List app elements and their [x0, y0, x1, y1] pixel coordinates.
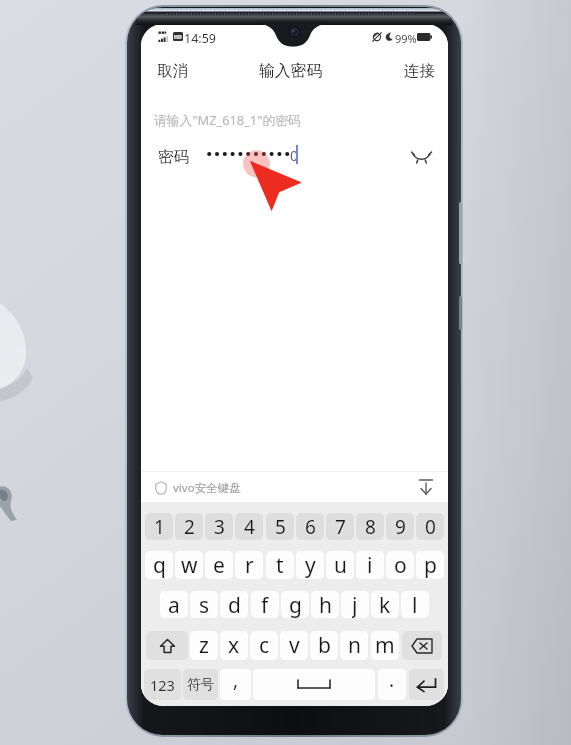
staticText: 8	[365, 514, 376, 540]
button[interactable]: .	[378, 669, 406, 700]
button[interactable]: y	[296, 551, 324, 579]
staticText: 0	[290, 146, 299, 165]
button[interactable]: j	[341, 591, 369, 618]
button[interactable]: 7	[326, 513, 354, 540]
button[interactable]: q	[145, 551, 173, 579]
button[interactable]: f	[251, 591, 279, 618]
staticText: c	[259, 631, 270, 660]
button[interactable]: 连接	[392, 52, 447, 90]
staticText: 3	[214, 514, 225, 540]
staticText: w	[181, 551, 198, 579]
button[interactable]: l	[401, 591, 429, 618]
button[interactable]: Space	[253, 669, 375, 700]
staticText: a	[168, 591, 180, 618]
staticText: 符号	[187, 676, 214, 693]
button[interactable]: h	[311, 591, 339, 618]
staticText: x	[228, 631, 240, 660]
button[interactable]: 123	[144, 669, 181, 700]
staticText: 123	[150, 675, 175, 695]
staticText: 1	[154, 514, 165, 540]
staticText: o	[394, 551, 407, 579]
button[interactable]: v	[280, 631, 308, 660]
button[interactable]: x	[220, 631, 248, 660]
staticText: d	[228, 591, 241, 618]
button[interactable]: a	[160, 591, 188, 618]
button[interactable]: 取消	[145, 52, 200, 90]
staticText: q	[153, 551, 166, 579]
button[interactable]: p	[416, 551, 444, 579]
staticText: 99%	[395, 31, 417, 46]
button[interactable]: z	[190, 631, 218, 660]
button[interactable]: Hide keyboard	[415, 477, 437, 499]
button[interactable]: k	[371, 591, 399, 618]
button[interactable]: d	[220, 591, 248, 618]
staticText: y	[305, 551, 316, 579]
staticText: k	[379, 591, 391, 618]
staticText: e	[213, 551, 225, 579]
button[interactable]: 密码	[141, 136, 448, 174]
staticText: 请输入"MZ_618_1"的密码	[154, 111, 301, 128]
staticText: 2	[184, 514, 195, 540]
button[interactable]: o	[386, 551, 414, 579]
staticText: 14:59	[184, 30, 216, 47]
staticText: p	[424, 551, 437, 579]
button[interactable]: g	[281, 591, 309, 618]
button[interactable]: r	[235, 551, 263, 579]
button[interactable]: Backspace	[402, 631, 442, 660]
button[interactable]: Shift	[146, 631, 188, 660]
staticText: f	[261, 591, 269, 618]
staticText: h	[319, 591, 332, 618]
button[interactable]: b	[310, 631, 338, 660]
button[interactable]: 5	[266, 513, 294, 540]
button[interactable]: u	[326, 551, 354, 579]
button[interactable]: w	[175, 551, 203, 579]
staticText: l	[412, 591, 418, 618]
staticText: .	[389, 669, 395, 693]
button[interactable]: ,	[220, 669, 251, 700]
staticText: ,	[233, 669, 239, 693]
staticText: 4	[244, 514, 255, 540]
staticText: vivo安全键盘	[173, 480, 241, 496]
button[interactable]: 2	[175, 513, 203, 540]
staticText: i	[367, 551, 373, 579]
staticText: z	[199, 631, 209, 660]
button[interactable]: 1	[145, 513, 173, 540]
staticText: v	[289, 631, 300, 660]
button[interactable]: 8	[356, 513, 384, 540]
staticText: 密码	[158, 147, 189, 167]
button[interactable]: Enter	[409, 669, 444, 700]
button[interactable]: e	[205, 551, 233, 579]
staticText: 输入密码	[259, 61, 323, 81]
button[interactable]: 输入密码	[247, 52, 335, 90]
staticText: 5	[275, 514, 286, 540]
staticText: 取消	[157, 61, 188, 81]
button[interactable]: t	[266, 551, 294, 579]
staticText: 连接	[404, 61, 435, 81]
button[interactable]: 9	[386, 513, 414, 540]
staticText: s	[199, 591, 210, 618]
button[interactable]: 3	[205, 513, 233, 540]
button[interactable]: 4	[235, 513, 263, 540]
staticText: 6	[305, 514, 316, 540]
button[interactable]: n	[340, 631, 368, 660]
staticText: HD	[174, 33, 182, 40]
button[interactable]: s	[190, 591, 218, 618]
staticText: 9	[395, 514, 406, 540]
button[interactable]: i	[356, 551, 384, 579]
staticText: j	[352, 591, 358, 618]
button[interactable]: 符号	[183, 669, 218, 700]
button[interactable]: 0	[416, 513, 444, 540]
staticText: g	[289, 591, 302, 618]
staticText: r	[245, 551, 254, 579]
button[interactable]: Show password	[408, 143, 435, 170]
button[interactable]: 6	[296, 513, 324, 540]
staticText: m	[375, 631, 395, 660]
staticText: 0	[425, 514, 436, 540]
staticText: b	[318, 631, 331, 660]
staticText: t	[276, 551, 284, 579]
button[interactable]: c	[250, 631, 278, 660]
staticText: 7	[335, 514, 346, 540]
button[interactable]: m	[371, 631, 399, 660]
staticText: u	[334, 551, 347, 579]
staticText: n	[348, 631, 361, 660]
